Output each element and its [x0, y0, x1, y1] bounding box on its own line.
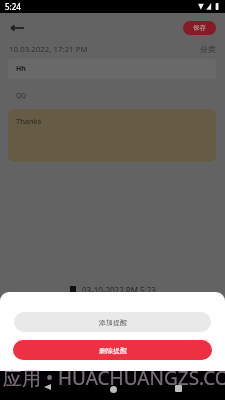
button[interactable]: 删除提醒: [13, 340, 212, 360]
staticText: 10.03.2022, 17:21 PM: [9, 44, 88, 55]
staticText: QQ: [16, 91, 27, 100]
button[interactable]: Hh: [8, 59, 216, 79]
button[interactable]: 保存: [183, 21, 216, 35]
staticText: Thanks: [16, 116, 42, 126]
staticText: 分类: [200, 44, 216, 54]
staticText: 添加提醒: [99, 318, 127, 327]
staticText: 删除提醒: [99, 346, 127, 355]
staticText: 保存: [193, 24, 206, 32]
staticText: 5:24: [5, 1, 21, 12]
staticText: Hh: [16, 64, 26, 74]
button[interactable]: 添加提醒: [14, 312, 211, 332]
button[interactable]: Back: [6, 17, 28, 39]
button[interactable]: Home: [103, 379, 123, 399]
staticText: 03-10-2022 PM 5:23: [82, 285, 156, 292]
staticText: 应用 • HUACHUANGZS.CO: [3, 365, 225, 391]
button[interactable]: Recents: [168, 378, 188, 398]
button[interactable]: Back: [37, 377, 57, 397]
